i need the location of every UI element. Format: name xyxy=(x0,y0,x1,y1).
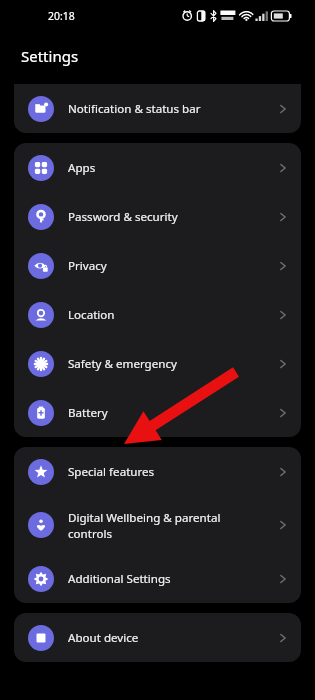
button[interactable]: Password & security xyxy=(14,192,301,241)
staticText: Battery xyxy=(68,405,277,421)
button[interactable]: Privacy xyxy=(14,241,301,290)
button[interactable]: Safety & emergency xyxy=(14,339,301,388)
button[interactable]: Digital Wellbeing & parental controls xyxy=(14,496,301,554)
staticText: Location xyxy=(68,307,277,323)
staticText: Safety & emergency xyxy=(68,356,277,372)
staticText: Apps xyxy=(68,160,277,176)
staticText: Digital Wellbeing & parental controls xyxy=(68,510,277,541)
button[interactable]: Special features xyxy=(14,447,301,496)
staticText: Special features xyxy=(68,464,277,480)
button[interactable]: Location xyxy=(14,290,301,339)
staticText: 20:18 xyxy=(48,9,75,23)
staticText: Additional Settings xyxy=(68,571,277,587)
button[interactable]: Additional Settings xyxy=(14,554,301,603)
staticText: Privacy xyxy=(68,258,277,274)
staticText: Notification & status bar xyxy=(68,101,277,117)
button[interactable]: About device xyxy=(14,613,301,662)
button[interactable]: Notification & status bar xyxy=(14,84,301,133)
staticText: About device xyxy=(68,630,277,646)
staticText: Settings xyxy=(21,46,79,66)
button[interactable]: Battery xyxy=(14,388,301,437)
button[interactable]: Apps xyxy=(14,143,301,192)
staticText: Password & security xyxy=(68,209,277,225)
